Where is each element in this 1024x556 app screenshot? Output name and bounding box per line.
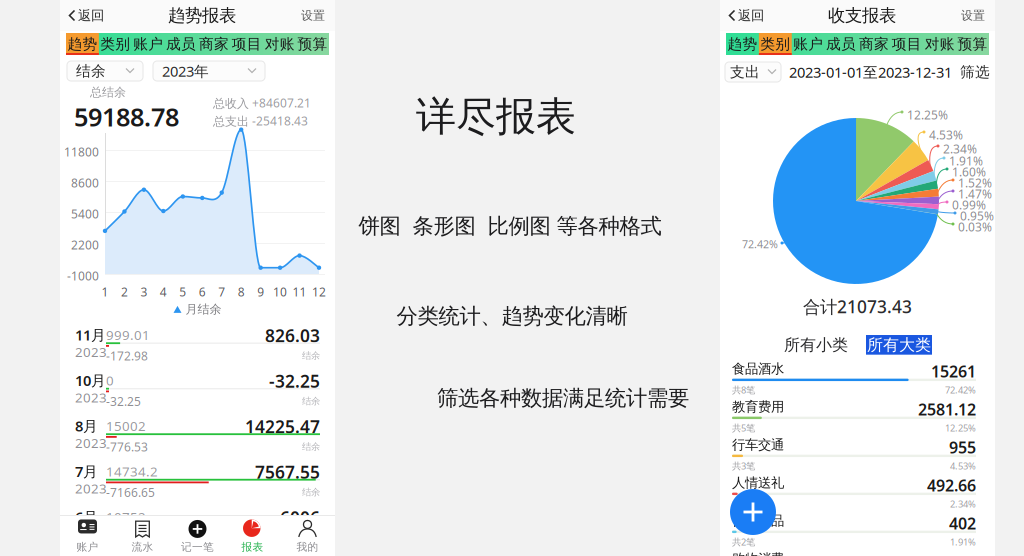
staticText: 月结余 [185,302,221,317]
staticText: 1.52% [958,175,992,191]
button[interactable]: 日常用品 [720,513,995,551]
staticText: 2023年 [162,61,209,81]
button[interactable]: 购物消费 [720,551,995,556]
button[interactable]: 10月 [60,362,335,408]
button[interactable]: 预算 [956,33,989,55]
button[interactable]: 对账 [263,33,296,55]
button[interactable]: 预算 [296,33,329,55]
staticText: 结余 [302,532,320,543]
button[interactable]: Add record [730,489,776,535]
staticText: 预算 [958,35,988,53]
staticText: 4.53% [929,127,963,143]
button[interactable]: 设置 [951,0,995,31]
staticText: 14734.2 [106,462,158,480]
staticText: 账户 [133,35,163,53]
staticText: 共5笔 [732,422,755,434]
staticText: 0.99% [952,197,986,213]
staticText: 返回 [78,7,104,24]
staticText: 15261 [931,361,976,382]
button[interactable]: 6月 [60,499,335,544]
staticText: 8 [238,284,245,300]
button[interactable]: 成员 [165,33,197,55]
button[interactable]: 人情送礼 [720,475,995,513]
staticText: 402 [949,513,976,534]
button[interactable]: 结余 [67,61,143,81]
staticText: 共2笔 [732,498,755,510]
button[interactable]: 设置 [291,0,335,31]
staticText: 6006 [280,506,320,529]
button[interactable]: 流水 [115,516,170,556]
staticText: 结余 [302,350,320,361]
button[interactable]: 7月 [60,453,335,499]
staticText: 7 [218,284,225,300]
staticText: 2200 [71,237,99,253]
staticText: -4756.1 [106,530,148,546]
staticText: 2.34% [950,498,976,510]
button[interactable]: 8月 [60,408,335,453]
staticText: 72.42% [945,384,976,396]
staticText: 2581.12 [918,399,976,420]
staticText: 趋势报表 [168,5,236,26]
button[interactable]: 教育费用 [720,399,995,437]
staticText: 9 [257,284,264,300]
button[interactable]: 项目 [890,33,923,55]
button[interactable]: 2023年 [153,61,265,81]
staticText: -1000 [67,268,99,284]
staticText: 2023-01-01至2023-12-31 [789,62,952,82]
button[interactable]: 趋势 [726,33,759,55]
staticText: 总支出 -25418.43 [213,113,308,129]
staticText: 11800 [64,144,99,160]
staticText: -32.25 [106,393,141,409]
staticText: 成员 [826,35,856,53]
staticText: 成员 [166,35,196,53]
button[interactable]: 返回 [720,0,773,31]
staticText: 共3笔 [732,460,755,472]
staticText: 1.60% [952,164,986,180]
button[interactable]: 项目 [230,33,263,55]
button[interactable]: 商家 [857,33,890,55]
button[interactable]: 商家 [197,33,230,55]
button[interactable]: 所有小类 [783,335,849,355]
staticText: 教育费用 [732,399,784,415]
staticText: 6 [199,284,206,300]
button[interactable]: 食品酒水 [720,361,995,399]
staticText: 返回 [738,7,764,24]
button[interactable]: 筛选 [960,63,990,81]
staticText: 账户 [76,540,98,553]
button[interactable]: 账户 [792,33,825,55]
button[interactable]: 账户 [132,33,165,55]
staticText: 我的 [296,540,318,553]
button[interactable]: 11月 [60,317,335,362]
staticText: 总结余 [90,85,126,100]
staticText: 商家 [199,35,229,53]
button[interactable]: 趋势 [66,33,99,55]
button[interactable]: 我的 [280,516,335,556]
button[interactable]: 类别 [759,33,792,55]
staticText: 结余 [302,395,320,407]
button[interactable]: 返回 [60,0,113,31]
button[interactable]: 类别 [99,33,132,55]
staticText: 记一笔 [181,540,214,553]
staticText: 共8笔 [732,384,755,396]
staticText: 设置 [301,8,325,23]
staticText: 日常用品 [732,513,784,529]
staticText: -172.98 [106,348,148,364]
button[interactable]: 报表 [225,516,280,556]
staticText: 支出 [730,63,760,81]
button[interactable]: 账户 [60,516,115,556]
staticText: 流水 [131,540,153,553]
button[interactable]: 记一笔 [170,516,225,556]
staticText: 购物消费 [732,551,784,556]
staticText: 11 [292,284,306,300]
staticText: 预算 [298,35,328,53]
button[interactable]: 成员 [825,33,857,55]
button[interactable]: 所有大类 [866,335,932,355]
staticText: 8600 [71,175,99,191]
staticText: 结余 [302,441,320,452]
button[interactable]: 行车交通 [720,437,995,475]
button[interactable]: 对账 [923,33,956,55]
staticText: -7166.65 [106,484,155,500]
staticText: 所有小类 [784,335,848,355]
staticText: 分类统计、趋势变化清晰 [396,303,627,329]
button[interactable]: 支出 [725,62,781,82]
